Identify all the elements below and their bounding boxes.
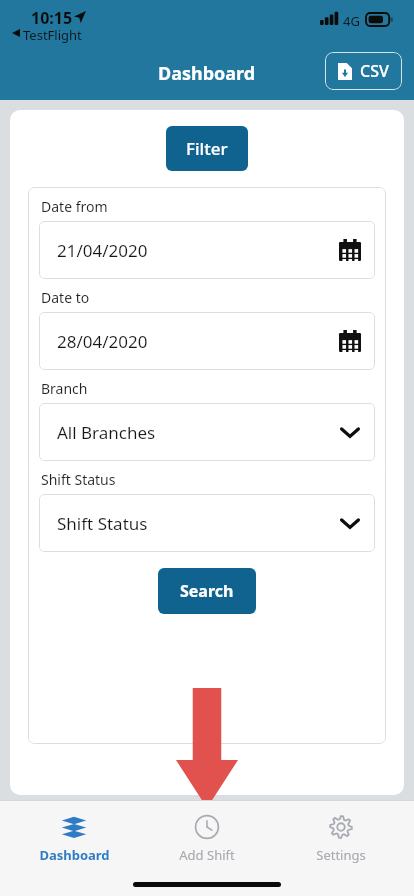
other: Pick date (339, 330, 361, 352)
other: Pick date (339, 239, 361, 261)
button[interactable]: Filter (166, 126, 248, 171)
staticText: CSV (360, 60, 389, 82)
staticText: Filter (186, 137, 228, 160)
staticText: Date to (41, 288, 90, 307)
button[interactable]: Add Shift (147, 814, 267, 864)
staticText: Shift Status (57, 512, 339, 535)
button[interactable]: Dashboard (14, 814, 134, 864)
staticText: 10:15 (31, 7, 73, 29)
button[interactable]: 28/04/2020 (39, 312, 375, 370)
staticText: 21/04/2020 (57, 239, 339, 262)
staticText: All Branches (57, 421, 339, 444)
staticText: Add Shift (179, 846, 235, 864)
staticText: Settings (316, 846, 366, 864)
button[interactable]: Settings (281, 814, 401, 864)
button[interactable]: All Branches (39, 403, 375, 461)
staticText: 28/04/2020 (57, 330, 339, 353)
staticText: Shift Status (41, 470, 116, 489)
staticText: Dashboard (39, 846, 110, 864)
staticText: 4G (343, 12, 360, 30)
button[interactable]: Search (158, 568, 256, 614)
button[interactable]: Shift Status (39, 494, 375, 552)
staticText: TestFlight (23, 26, 82, 44)
staticText: Dashboard (158, 61, 256, 86)
other: Open dropdown (339, 421, 361, 443)
button[interactable]: 21/04/2020 (39, 221, 375, 279)
staticText: Search (180, 580, 234, 602)
other: Open dropdown (339, 512, 361, 534)
staticText: Branch (41, 379, 88, 398)
staticText: Date from (41, 197, 108, 216)
button[interactable]: CSV (325, 52, 402, 90)
